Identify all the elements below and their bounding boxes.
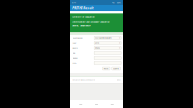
button[interactable]: Year <box>70 41 123 45</box>
button[interactable]: Home <box>91 101 101 108</box>
button[interactable]: Results of All Education Boards <box>70 77 123 83</box>
staticText: PRITHI Result <box>72 6 93 10</box>
staticText: Board <box>73 47 78 49</box>
staticText: Reset <box>104 67 109 70</box>
staticText: 4 + 6 = <box>73 62 77 64</box>
staticText: Submit <box>113 67 119 70</box>
staticText: Reg. No <box>73 57 78 59</box>
staticText: 4G 83% <box>112 1 121 4</box>
staticText: Boards, Bangladesh <box>72 24 90 27</box>
button[interactable]: Roll <box>70 51 123 55</box>
staticText: SSC/Dakhil/Equivalent <box>95 37 112 39</box>
button[interactable]: Reg. No <box>70 56 123 60</box>
staticText: Roll <box>73 52 75 54</box>
button[interactable]: Reset <box>102 67 110 70</box>
button[interactable]: Board <box>70 46 123 50</box>
button[interactable]: Recents <box>107 101 117 108</box>
button[interactable]: 4 + 6 = <box>70 61 123 65</box>
staticText: 2018 <box>95 42 99 44</box>
button[interactable]: Back <box>76 101 86 108</box>
button[interactable]: Examination <box>70 36 123 40</box>
staticText: Examination <box>73 37 83 39</box>
staticText: Dhaka <box>95 47 100 49</box>
staticText: Results of All Education Boards <box>72 79 95 81</box>
staticText: Close <box>117 79 121 81</box>
button[interactable]: Submit <box>112 67 120 70</box>
staticText: Intermediate and Secondary Education <box>72 20 109 23</box>
staticText: Ministry of Education <box>72 15 94 18</box>
staticText: Year <box>73 42 77 44</box>
staticText: 9:41 <box>72 1 76 4</box>
